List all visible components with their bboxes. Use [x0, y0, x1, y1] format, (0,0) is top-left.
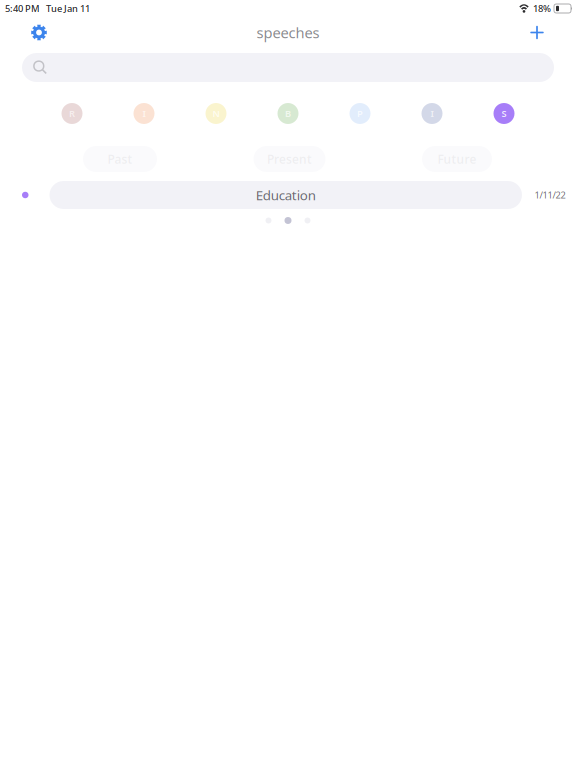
staticText: Tue Jan 11: [46, 2, 90, 15]
staticText: I: [142, 107, 145, 120]
button[interactable]: N: [205, 103, 226, 124]
button[interactable]: I: [133, 103, 154, 124]
staticText: 1/11/22: [534, 189, 565, 201]
staticText: Future: [437, 151, 476, 167]
staticText: N: [212, 107, 219, 120]
staticText: 18%: [533, 2, 551, 15]
button[interactable]: B: [277, 103, 298, 124]
staticText: S: [501, 107, 506, 120]
staticText: I: [430, 107, 433, 120]
staticText: Education: [256, 186, 316, 204]
button[interactable]: P: [349, 103, 370, 124]
staticText: R: [69, 107, 75, 120]
staticText: speeches: [256, 23, 319, 42]
button[interactable]: Present: [253, 146, 325, 172]
button[interactable]: R: [61, 103, 82, 124]
staticText: Present: [267, 151, 312, 167]
button[interactable]: New speech: [523, 18, 551, 46]
staticText: B: [285, 107, 291, 120]
staticText: P: [357, 107, 363, 120]
button[interactable]: I: [421, 103, 442, 124]
staticText: 5:40 PM: [5, 2, 40, 15]
button[interactable]: Education: [49, 181, 522, 209]
button[interactable]: Settings: [25, 18, 53, 46]
staticText: Past: [107, 151, 132, 167]
button[interactable]: S: [493, 103, 514, 124]
